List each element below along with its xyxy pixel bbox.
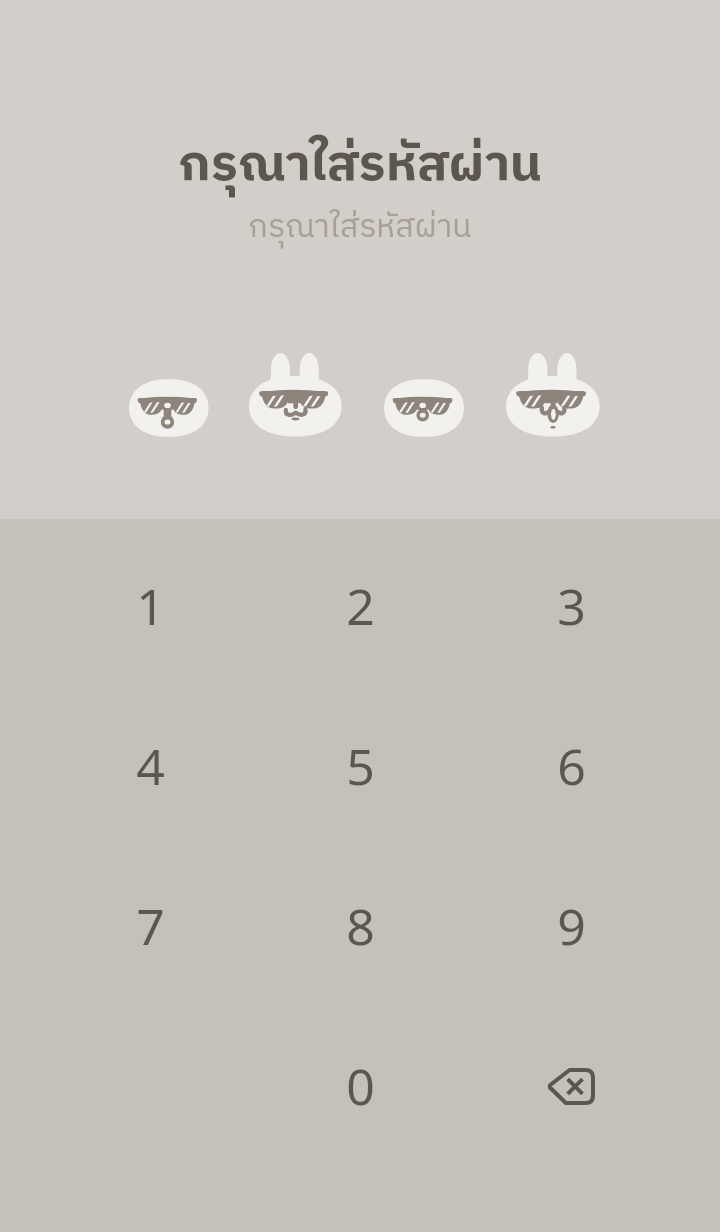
button[interactable]: 5 [280,704,440,828]
button[interactable]: 9 [491,864,651,988]
staticText: 6 [557,732,586,800]
button[interactable]: 8 [280,864,440,988]
button[interactable]: 4 [70,704,230,828]
button[interactable]: 7 [70,864,230,988]
staticText: 9 [557,892,586,960]
staticText: 1 [136,572,165,640]
button[interactable]: Backspace [491,1024,651,1148]
button[interactable]: 3 [491,544,651,668]
staticText: 5 [346,732,375,800]
staticText: 2 [346,572,375,640]
button[interactable]: 6 [491,704,651,828]
staticText: 3 [557,572,586,640]
button[interactable]: 1 [70,544,230,668]
button[interactable]: 0 [280,1024,440,1148]
staticText: 7 [136,892,165,960]
staticText: 4 [136,732,165,800]
button[interactable]: 2 [280,544,440,668]
staticText: กรุณาใส่รหัสผ่าน [0,124,720,207]
staticText: 8 [346,892,375,960]
staticText: กรุณาใส่รหัสผ่าน [0,201,720,254]
staticText: 0 [346,1052,375,1120]
